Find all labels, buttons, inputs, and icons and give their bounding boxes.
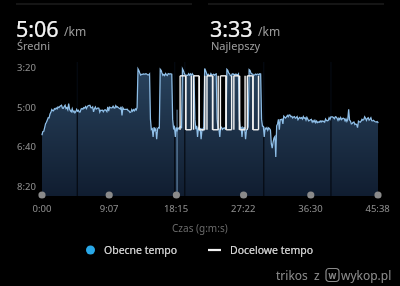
button[interactable]: Pace chart for activity [0, 0, 400, 286]
